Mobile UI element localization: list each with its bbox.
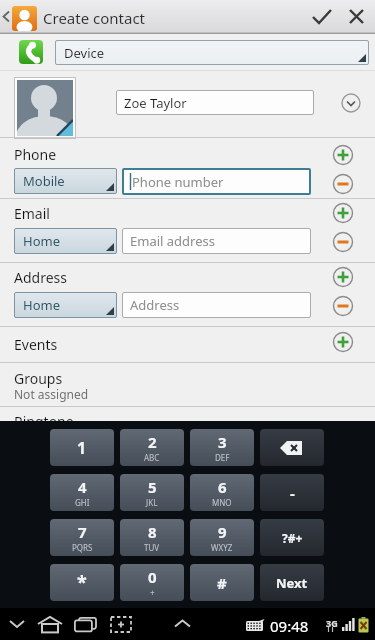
staticText: 8	[148, 522, 157, 542]
button[interactable]: 9	[190, 519, 254, 556]
staticText: PQRS	[72, 542, 93, 553]
button[interactable]: Phone number	[122, 168, 311, 195]
staticText: Email	[14, 204, 50, 223]
button[interactable]	[260, 429, 324, 466]
staticText: 6	[218, 477, 227, 497]
button[interactable]	[74, 617, 97, 632]
staticText: 2	[148, 432, 157, 452]
button[interactable]: 6	[190, 474, 254, 511]
staticText: +	[150, 587, 155, 598]
button[interactable]: Mobile	[14, 168, 117, 194]
button[interactable]	[331, 172, 355, 196]
staticText: Not assigned	[14, 386, 89, 402]
staticText: Create contact	[43, 8, 146, 28]
button[interactable]: Next	[260, 564, 324, 601]
staticText: 3G	[326, 617, 338, 629]
staticText: MNO	[212, 497, 232, 508]
staticText: Next	[276, 574, 308, 592]
button[interactable]: -	[260, 474, 324, 511]
button[interactable]	[331, 230, 355, 254]
button[interactable]	[331, 143, 355, 167]
button[interactable]: 5	[120, 474, 184, 511]
button[interactable]	[110, 616, 132, 633]
staticText: -	[290, 483, 295, 503]
button[interactable]: 2	[120, 429, 184, 466]
staticText: 9	[218, 522, 227, 542]
button[interactable]: 8	[120, 519, 184, 556]
staticText: 0	[148, 567, 157, 587]
staticText: Zoe Taylor	[124, 94, 187, 112]
staticText: *	[77, 570, 87, 595]
button[interactable]: 0	[120, 564, 184, 601]
staticText: #	[217, 573, 227, 593]
staticText: Home	[23, 232, 60, 250]
staticText: 5	[148, 477, 157, 497]
button[interactable]	[331, 265, 355, 289]
button[interactable]	[19, 40, 43, 64]
button[interactable]	[173, 618, 193, 630]
staticText: Groups	[14, 369, 63, 388]
staticText: WXYZ	[211, 542, 233, 553]
staticText: ?#+	[282, 530, 303, 546]
staticText: Home	[23, 296, 60, 314]
staticText: 7	[78, 522, 87, 542]
button[interactable]	[331, 201, 355, 225]
staticText: 1	[77, 437, 87, 459]
staticText: 09:48	[270, 616, 309, 636]
button[interactable]	[37, 616, 63, 633]
staticText: Email address	[130, 232, 215, 250]
staticText: ABC	[144, 452, 160, 463]
button[interactable]	[14, 77, 76, 139]
button[interactable]: #	[190, 564, 254, 601]
button[interactable]: Home	[14, 292, 117, 318]
button[interactable]: 7	[50, 519, 114, 556]
button[interactable]: 4	[50, 474, 114, 511]
staticText: Mobile	[23, 172, 65, 190]
staticText: Phone	[14, 145, 57, 164]
staticText: Phone number	[132, 173, 224, 191]
staticText: GHI	[75, 497, 90, 508]
button[interactable]: Home	[14, 228, 117, 254]
button[interactable]	[341, 1, 373, 33]
button[interactable]: Device	[55, 40, 369, 65]
staticText: TUV	[144, 542, 160, 553]
staticText: Address	[130, 296, 180, 314]
staticText: Ringtone	[14, 412, 74, 431]
button[interactable]: Zoe Taylor	[116, 90, 314, 115]
staticText: Events	[14, 335, 58, 354]
button[interactable]	[331, 330, 355, 354]
button[interactable]: ?#+	[260, 519, 324, 556]
button[interactable]: 3	[190, 429, 254, 466]
button[interactable]	[341, 93, 361, 113]
button[interactable]: Email address	[122, 228, 311, 254]
staticText: DEF	[215, 452, 230, 463]
button[interactable]	[8, 616, 28, 632]
staticText: 4	[78, 477, 87, 497]
button[interactable]	[305, 1, 339, 33]
button[interactable]: 1	[50, 429, 114, 466]
staticText: Address	[14, 268, 67, 287]
staticText: Device	[64, 44, 105, 62]
button[interactable]: *	[50, 564, 114, 601]
button[interactable]	[331, 294, 355, 318]
button[interactable]: Address	[122, 292, 311, 318]
staticText: JKL	[146, 497, 158, 508]
staticText: 3	[218, 432, 227, 452]
button[interactable]	[12, 6, 37, 31]
